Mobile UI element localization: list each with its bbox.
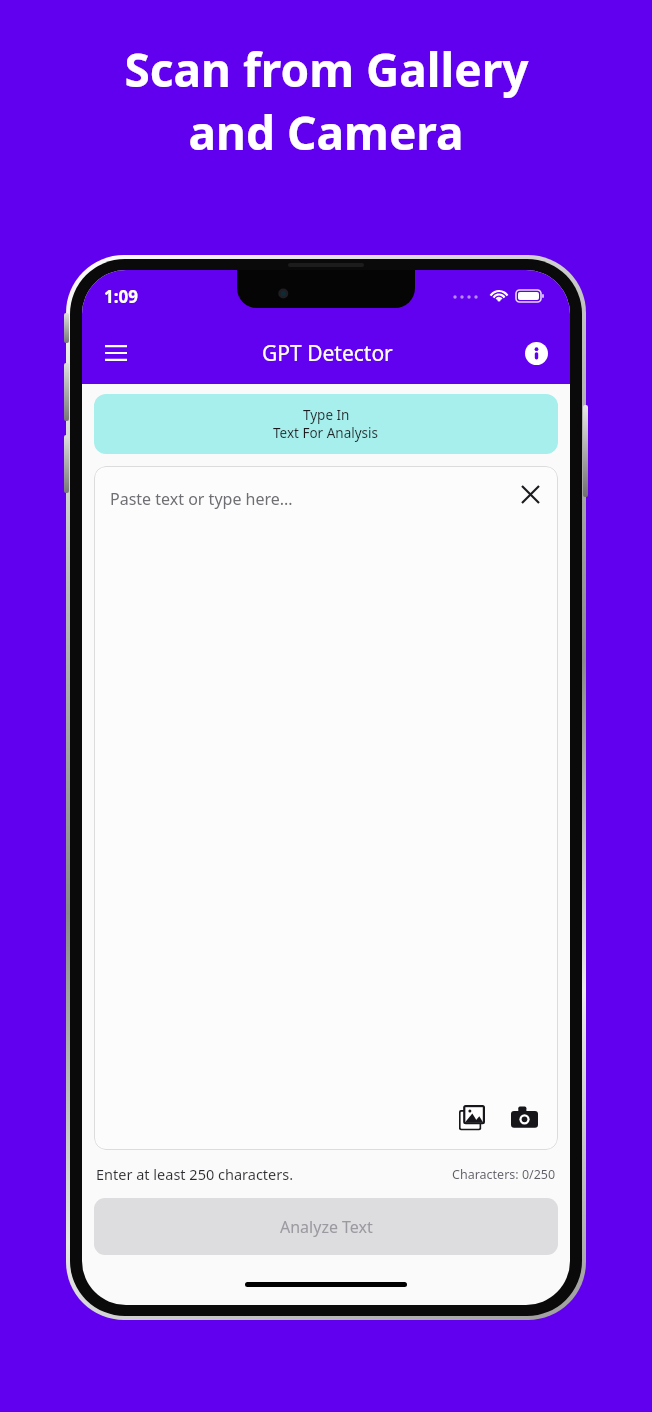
button[interactable]: Type In [94, 394, 558, 454]
button[interactable]: Info [514, 331, 558, 375]
staticText: Scan from Gallery [124, 38, 529, 101]
staticText: and Camera [188, 101, 464, 164]
staticText: Paste text or type here... [110, 488, 293, 510]
staticText: GPT Detector [262, 339, 393, 368]
staticText: Analyze Text [280, 1216, 373, 1238]
staticText: Type In [303, 406, 350, 424]
staticText: 1:09 [104, 285, 138, 308]
button[interactable]: Pick from gallery [450, 1096, 494, 1140]
button[interactable]: Take photo [502, 1096, 546, 1140]
button[interactable]: Menu [92, 329, 140, 377]
staticText: Enter at least 250 characters. [96, 1164, 294, 1184]
button[interactable]: Analyze Text [94, 1198, 558, 1255]
button[interactable]: Clear text [510, 474, 550, 514]
staticText: Characters: 0/250 [452, 1166, 556, 1183]
staticText: Text For Analysis [273, 424, 379, 442]
